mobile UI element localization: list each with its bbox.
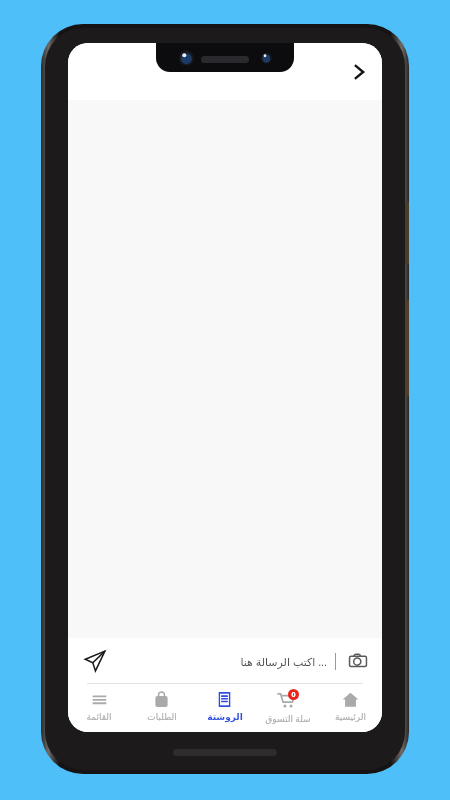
staticText: الطلبات <box>147 712 177 722</box>
staticText: 0 <box>291 690 296 700</box>
button[interactable]: القائمة <box>68 684 130 732</box>
staticText: اكتب الرسالة هنا ... <box>240 654 327 669</box>
staticText: الروشتة <box>207 712 243 722</box>
button[interactable]: 0 <box>256 684 319 732</box>
button[interactable]: الروشتة <box>193 684 256 732</box>
button[interactable]: الطلبات <box>130 684 193 732</box>
button[interactable]: اكتب الرسالة هنا ... <box>240 654 327 669</box>
staticText: الرئيسية <box>335 712 366 722</box>
staticText: القائمة <box>86 712 112 722</box>
button[interactable]: Camera <box>344 647 372 675</box>
button[interactable]: Next <box>342 55 376 89</box>
button[interactable]: الرئيسية <box>319 684 382 732</box>
staticText: سلة التسوق <box>265 712 311 724</box>
button[interactable]: Send <box>78 644 112 678</box>
